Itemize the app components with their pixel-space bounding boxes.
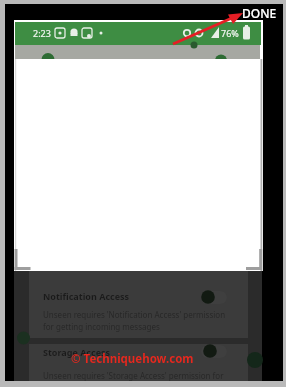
button[interactable]: Notification Access: [29, 271, 248, 338]
staticText: 2:23: [33, 27, 51, 39]
staticText: Unseen requires 'Storage Access' permiss…: [43, 370, 224, 381]
staticText: for getting incoming messages: [43, 321, 160, 332]
button[interactable]: Storage Access: [29, 344, 248, 381]
staticText: © Techniquehow.com: [71, 351, 194, 367]
staticText: Notification Access: [43, 290, 130, 302]
button[interactable]: DONE: [240, 4, 284, 20]
staticText: 76%: [221, 27, 239, 39]
staticText: DONE: [242, 5, 277, 21]
staticText: Unseen requires 'Notification Access' pe…: [43, 309, 226, 320]
staticText: Storage Access: [43, 346, 111, 358]
button[interactable]: [15, 59, 262, 271]
